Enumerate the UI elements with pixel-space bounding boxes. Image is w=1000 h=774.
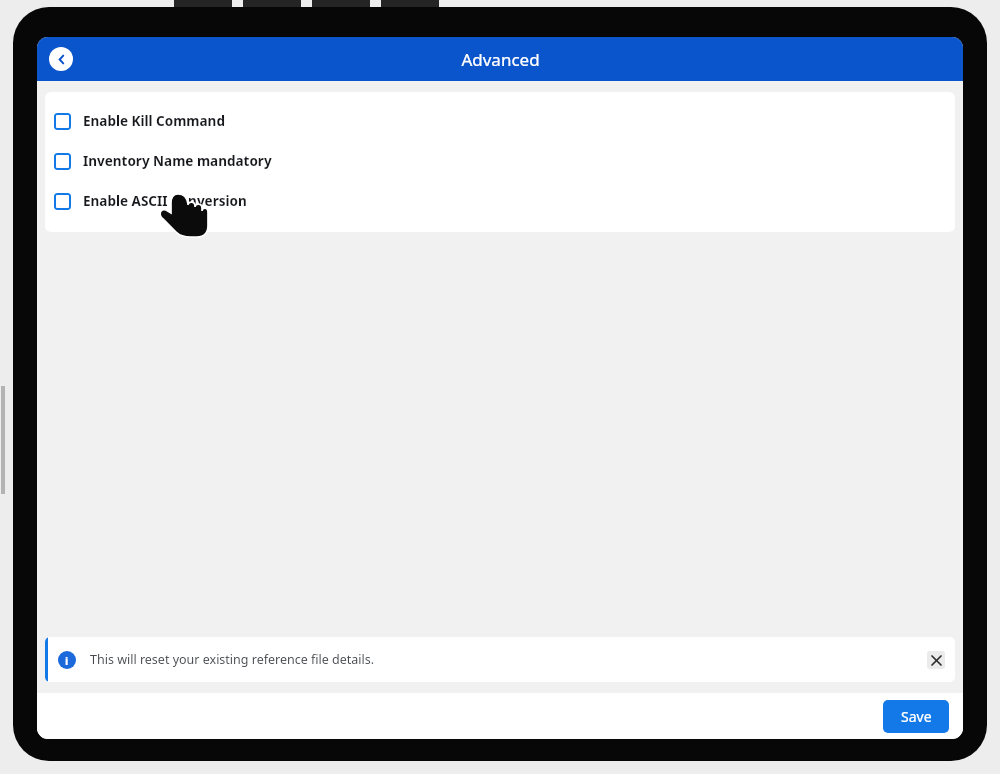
button[interactable]: Enable ASCII Conversion xyxy=(45,181,955,221)
staticText: Enable ASCII Conversion xyxy=(83,192,247,210)
button[interactable]: Inventory Name mandatory xyxy=(45,141,955,181)
staticText: Save xyxy=(901,707,932,726)
staticText: Enable Kill Command xyxy=(83,112,225,130)
staticText: Inventory Name mandatory xyxy=(83,152,272,170)
button[interactable]: Back xyxy=(49,47,73,71)
button[interactable]: Save xyxy=(883,700,949,733)
staticText: Advanced xyxy=(461,48,540,71)
staticText: i xyxy=(65,653,69,668)
button[interactable]: Enable Kill Command xyxy=(45,101,955,141)
button[interactable]: Close xyxy=(927,651,945,669)
staticText: This will reset your existing reference … xyxy=(90,651,375,668)
